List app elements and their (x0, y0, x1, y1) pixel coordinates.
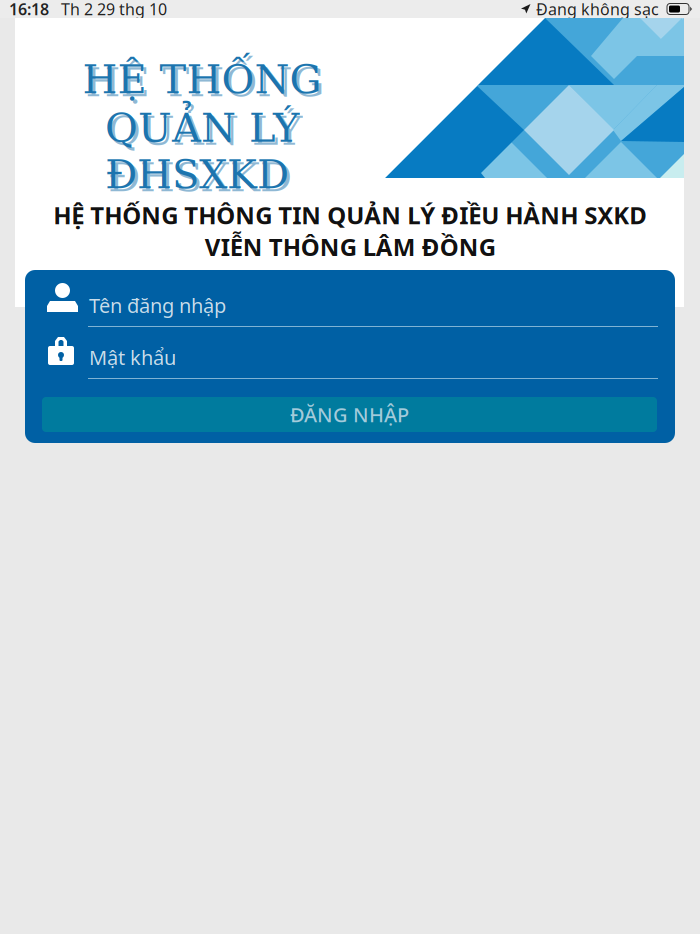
button[interactable]: ĐĂNG NHẬP (42, 397, 657, 432)
staticText: Tên đăng nhập (89, 292, 226, 319)
staticText: HỆ THỐNG (85, 59, 324, 106)
staticText: Th 2 29 thg 10 (61, 0, 167, 20)
staticText: Đang không sạc (536, 0, 659, 20)
staticText: 16:18 (9, 0, 49, 20)
staticText: HỆ THỐNG (82, 56, 321, 103)
staticText: HỆ THỐNG THÔNG TIN QUẢN LÝ ĐIỀU HÀNH SXK… (53, 199, 647, 263)
staticText: Mật khẩu (89, 344, 176, 371)
staticText: QUẢN LÝ ĐHSXKD (105, 105, 299, 198)
staticText: ĐĂNG NHẬP (290, 401, 409, 428)
staticText: QUẢN LÝ ĐHSXKD (108, 108, 302, 201)
